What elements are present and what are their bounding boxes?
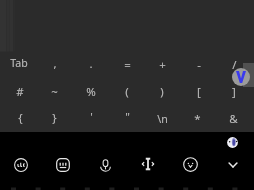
staticText: Tab bbox=[10, 56, 28, 70]
button[interactable]: ( bbox=[107, 80, 147, 104]
button[interactable]: Keyboard layout bbox=[47, 149, 79, 181]
button[interactable]: % bbox=[71, 80, 111, 104]
staticText: - bbox=[197, 57, 201, 73]
button[interactable]: Voice input bbox=[89, 149, 121, 181]
button[interactable]: ) bbox=[142, 80, 182, 104]
button[interactable]: Emoji bbox=[174, 148, 206, 180]
staticText: } bbox=[52, 110, 57, 126]
button[interactable]: * bbox=[177, 107, 217, 131]
button[interactable]: ~ bbox=[34, 80, 74, 104]
button[interactable]: \n bbox=[142, 107, 182, 131]
button[interactable]: . bbox=[71, 52, 111, 76]
button[interactable]: Switch language bbox=[5, 149, 37, 181]
staticText: + bbox=[159, 57, 166, 73]
staticText: * bbox=[194, 111, 201, 127]
button[interactable]: { bbox=[0, 106, 40, 130]
button[interactable]: = bbox=[107, 53, 147, 77]
button[interactable]: } bbox=[34, 106, 74, 130]
button[interactable]: Hide keyboard bbox=[217, 149, 249, 181]
button[interactable]: ' bbox=[71, 105, 111, 129]
staticText: , bbox=[53, 56, 57, 72]
staticText: & bbox=[229, 111, 238, 127]
staticText: # bbox=[16, 84, 24, 100]
staticText: ) bbox=[160, 84, 164, 100]
button[interactable]: Move cursor bbox=[132, 148, 164, 180]
button[interactable]: ] bbox=[214, 80, 254, 104]
staticText: \n bbox=[157, 112, 168, 126]
staticText: . bbox=[89, 56, 93, 72]
button[interactable]: Tab bbox=[0, 51, 39, 75]
staticText: % bbox=[86, 84, 96, 100]
button[interactable]: / bbox=[214, 53, 254, 77]
staticText: = bbox=[124, 57, 131, 73]
button[interactable]: " bbox=[107, 105, 147, 129]
staticText: [ bbox=[197, 84, 201, 100]
button[interactable]: [ bbox=[179, 80, 219, 104]
button[interactable]: Sticker bbox=[227, 136, 239, 148]
staticText: ] bbox=[232, 84, 236, 100]
button[interactable]: Cursor handle bbox=[232, 68, 250, 86]
button[interactable]: + bbox=[142, 53, 182, 77]
button[interactable]: , bbox=[35, 52, 75, 76]
staticText: ~ bbox=[51, 84, 58, 100]
button[interactable]: & bbox=[213, 107, 253, 131]
button[interactable]: - bbox=[179, 53, 219, 77]
staticText: ' bbox=[90, 109, 93, 125]
button[interactable]: # bbox=[0, 80, 40, 104]
staticText: { bbox=[18, 110, 23, 126]
staticText: ( bbox=[125, 84, 129, 100]
staticText: / bbox=[232, 57, 237, 73]
staticText: " bbox=[125, 109, 130, 125]
